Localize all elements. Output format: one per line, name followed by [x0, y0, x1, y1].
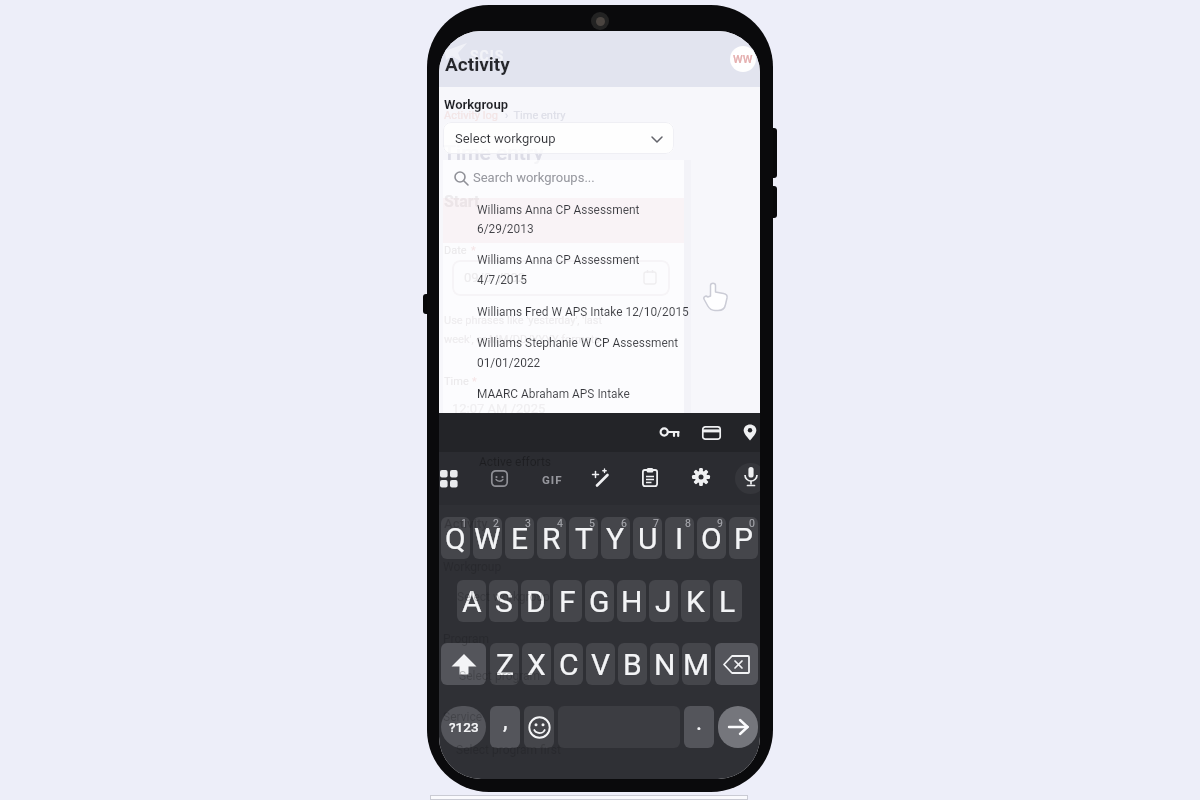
button[interactable]: ?123 — [441, 706, 486, 748]
button[interactable]: K — [681, 580, 710, 622]
button[interactable]: G — [585, 580, 614, 622]
staticText: Search workgroups... — [473, 170, 595, 185]
button[interactable]: C — [554, 643, 583, 685]
button[interactable]: D — [521, 580, 550, 622]
staticText: 4 — [557, 517, 563, 529]
button[interactable]: MAARC Abraham APS Intake — [443, 383, 684, 413]
staticText: X — [527, 647, 546, 682]
staticText: Start — [444, 192, 480, 211]
staticText: H — [621, 584, 643, 619]
staticText: C — [559, 647, 579, 682]
button[interactable] — [642, 468, 658, 487]
button[interactable]: B — [618, 643, 647, 685]
button[interactable]: I — [665, 517, 694, 559]
button[interactable]: T — [569, 517, 598, 559]
button[interactable]: Williams Anna CP Assessment — [443, 243, 684, 295]
staticText: GIF — [542, 473, 563, 486]
staticText: J — [655, 584, 672, 619]
staticText: Time — [444, 375, 472, 388]
staticText: Workgroup — [444, 97, 508, 112]
button[interactable]: GIF — [535, 466, 569, 492]
button[interactable] — [715, 643, 758, 685]
button[interactable] — [744, 467, 758, 487]
staticText: Select program first — [456, 743, 561, 757]
staticText: Active efforts — [479, 455, 552, 469]
button[interactable] — [524, 706, 554, 748]
staticText: 12:07 AM /2025 — [452, 401, 546, 416]
staticText: * — [472, 375, 477, 388]
staticText: 0 — [749, 517, 755, 529]
staticText: Select workgroup — [455, 131, 556, 146]
staticText: 6/29/2013 — [477, 222, 534, 236]
button[interactable] — [660, 426, 680, 438]
button[interactable]: V — [586, 643, 615, 685]
button[interactable]: M — [682, 643, 711, 685]
staticText: T — [575, 521, 593, 556]
button[interactable] — [441, 643, 486, 685]
button[interactable]: E — [505, 517, 534, 559]
staticText: Y — [606, 521, 625, 556]
staticText: D — [526, 584, 546, 619]
button[interactable]: S — [489, 580, 518, 622]
staticText: 6 — [621, 517, 627, 529]
staticText: Williams Anna CP Assessment — [477, 253, 640, 267]
button[interactable]: Williams Anna CP Assessment — [443, 198, 684, 243]
button[interactable]: Q — [441, 517, 470, 559]
staticText: * — [471, 244, 476, 257]
button[interactable]: , — [490, 706, 520, 748]
button[interactable]: Search workgroups... — [443, 160, 684, 197]
button[interactable]: Williams Stephanie W CP Assessment — [443, 331, 684, 383]
button[interactable]: W — [473, 517, 502, 559]
staticText: 2 — [493, 517, 499, 529]
button[interactable] — [440, 470, 458, 488]
button[interactable] — [592, 468, 611, 487]
button[interactable]: X — [522, 643, 551, 685]
button[interactable]: R — [537, 517, 566, 559]
staticText: Q — [445, 521, 466, 556]
staticText: I — [675, 521, 684, 556]
staticText: P — [734, 521, 753, 556]
staticText: W — [474, 521, 501, 556]
button[interactable] — [692, 468, 710, 486]
button[interactable] — [743, 424, 757, 441]
button[interactable] — [702, 426, 721, 440]
staticText: week', or MM/DD/YYYY formats — [444, 333, 600, 346]
button[interactable]: U — [633, 517, 662, 559]
button[interactable]: Z — [490, 643, 519, 685]
staticText: 09/0 /202 — [464, 270, 526, 285]
staticText: WW — [733, 53, 753, 66]
button[interactable]: . — [684, 706, 714, 748]
staticText: R — [542, 521, 561, 556]
button[interactable]: N — [650, 643, 679, 685]
button[interactable]: J — [649, 580, 678, 622]
staticText: E — [511, 521, 529, 556]
staticText: 4/7/2015 — [477, 273, 527, 287]
button[interactable]: H — [617, 580, 646, 622]
button[interactable]: L — [713, 580, 742, 622]
staticText: ?123 — [449, 719, 479, 735]
button[interactable]: Williams Fred W APS Intake 12/10/2015 — [443, 295, 684, 331]
button[interactable]: Select workgroup — [443, 122, 674, 154]
staticText: Williams Fred W APS Intake 12/10/2015 — [477, 305, 689, 319]
button[interactable]: WW — [730, 46, 756, 72]
staticText: 1 — [461, 517, 467, 529]
staticText: F — [559, 584, 576, 619]
button[interactable]: P — [729, 517, 758, 559]
staticText: SCIS — [470, 48, 505, 64]
button[interactable] — [718, 706, 758, 748]
staticText: S — [495, 584, 513, 619]
staticText: Program — [443, 632, 489, 646]
staticText: › Time entry — [505, 109, 566, 122]
staticText: 3 — [525, 517, 531, 529]
staticText: 01/01/2022 — [477, 356, 541, 370]
staticText: O — [701, 521, 722, 556]
button[interactable] — [491, 470, 508, 487]
staticText: Date — [444, 244, 470, 257]
staticText: , — [503, 708, 508, 735]
button[interactable]: F — [553, 580, 582, 622]
button[interactable]: O — [697, 517, 726, 559]
button[interactable]: A — [457, 580, 486, 622]
button[interactable]: Y — [601, 517, 630, 559]
